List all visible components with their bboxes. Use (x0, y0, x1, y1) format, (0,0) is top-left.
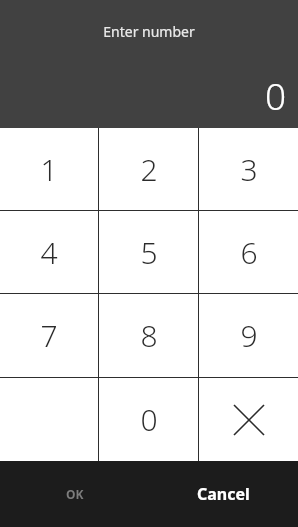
staticText: 3 (240, 149, 258, 190)
button[interactable]: OK (0, 461, 149, 527)
staticText: 5 (140, 232, 158, 273)
button[interactable]: 8 (99, 294, 198, 377)
button[interactable]: 9 (199, 294, 298, 377)
staticText: Enter number (103, 22, 195, 41)
staticText: Cancel (197, 483, 250, 505)
staticText: 2 (140, 149, 158, 190)
staticText: 8 (140, 315, 158, 356)
staticText: 0 (265, 70, 287, 120)
staticText: 0 (140, 399, 158, 440)
button[interactable]: 7 (0, 294, 98, 377)
staticText: 4 (40, 232, 58, 273)
button[interactable]: 5 (99, 211, 198, 293)
staticText: 1 (40, 149, 58, 190)
button[interactable]: Backspace (199, 378, 298, 461)
button[interactable]: Cancel (149, 461, 298, 527)
button[interactable]: 3 (199, 128, 298, 210)
button[interactable]: 2 (99, 128, 198, 210)
button[interactable]: 1 (0, 128, 98, 210)
staticText: 9 (240, 315, 258, 356)
button[interactable]: 6 (199, 211, 298, 293)
button[interactable]: 0 (99, 378, 198, 461)
staticText: OK (66, 486, 84, 502)
staticText: 7 (40, 315, 58, 356)
button[interactable]: 4 (0, 211, 98, 293)
staticText: 6 (240, 232, 258, 273)
